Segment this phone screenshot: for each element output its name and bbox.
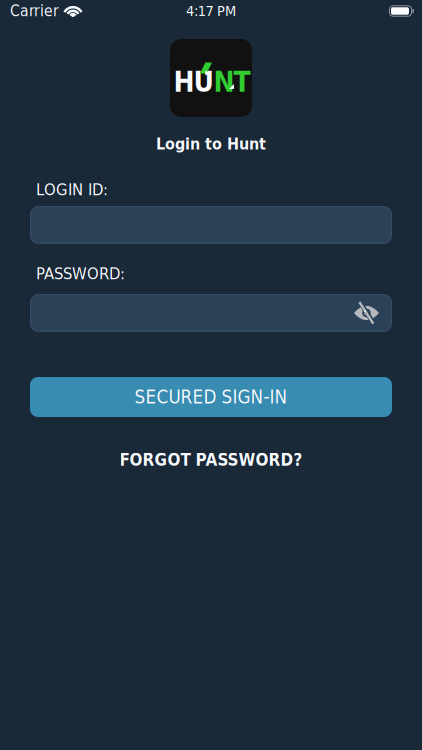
staticText: 4:17 PM [186,3,236,19]
button[interactable] [30,206,392,244]
staticText: FORGOT PASSWORD? [119,450,302,470]
staticText: SECURED SIGN-IN [134,386,287,408]
button[interactable]: SECURED SIGN-IN [30,377,392,417]
staticText: Login to Hunt [156,135,266,153]
staticText: LOGIN ID: [36,180,108,199]
staticText: Carrier [10,2,59,20]
button[interactable] [353,300,380,326]
staticText: NT [213,66,250,98]
button[interactable] [30,294,392,332]
button[interactable]: FORGOT PASSWORD? [119,450,302,470]
staticText: PASSWORD: [36,264,125,283]
staticText: HU [173,66,213,98]
